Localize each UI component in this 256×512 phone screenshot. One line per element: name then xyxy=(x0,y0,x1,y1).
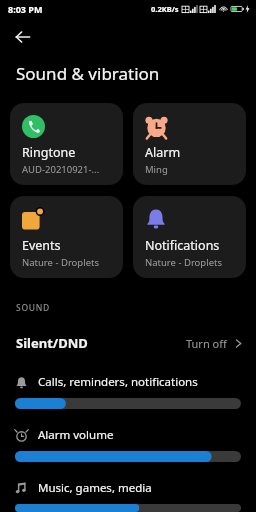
button[interactable]: Back xyxy=(8,22,38,52)
staticText: Calls, reminders, notifications xyxy=(38,374,198,390)
staticText: Alarm xyxy=(145,144,181,161)
staticText: Music, games, media xyxy=(38,480,152,496)
staticText: Alarm volume xyxy=(38,427,114,443)
staticText: SOUND xyxy=(16,302,50,314)
button[interactable]: Calls, reminders, notifications xyxy=(0,374,256,409)
staticText: Ringtone xyxy=(22,144,76,161)
staticText: Ming xyxy=(145,163,168,176)
staticText: Sound & vibration xyxy=(16,62,160,85)
staticText: 8:03 PM xyxy=(8,3,43,15)
button[interactable]: Silent/DND xyxy=(0,328,256,358)
staticText: Notifications xyxy=(145,237,220,254)
staticText: Events xyxy=(22,237,61,254)
staticText: Silent/DND xyxy=(16,334,88,352)
button[interactable]: Ringtone xyxy=(10,103,123,185)
button[interactable]: Events xyxy=(10,196,123,278)
staticText: 0.2KB/s xyxy=(151,4,179,14)
staticText: AUD-20210921-... xyxy=(22,163,100,176)
button[interactable]: Alarm xyxy=(133,103,246,185)
staticText: Nature - Droplets xyxy=(145,256,222,269)
button[interactable]: Notifications xyxy=(133,196,246,278)
staticText: Nature - Droplets xyxy=(22,256,99,269)
staticText: Turn off xyxy=(186,336,227,351)
button[interactable]: Music, games, media xyxy=(0,480,256,512)
button[interactable]: Alarm volume xyxy=(0,427,256,462)
